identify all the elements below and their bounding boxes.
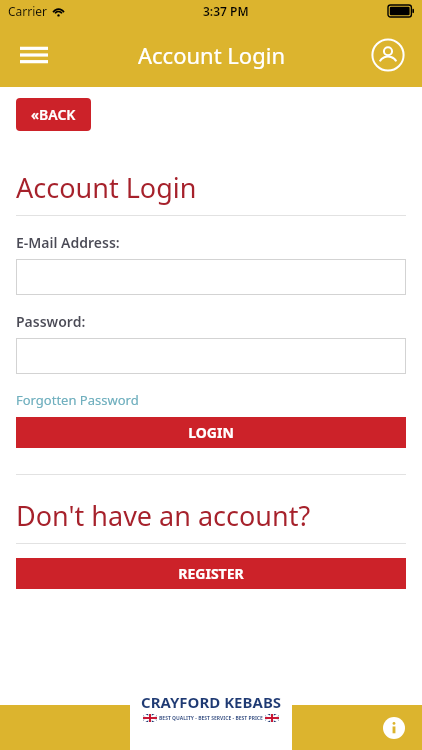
button[interactable]: Information <box>374 708 414 748</box>
button[interactable]: CRAYFORD KEBABS <box>130 675 292 750</box>
button[interactable]: Forgotten Password <box>16 391 139 409</box>
staticText: Account Login <box>138 40 285 70</box>
staticText: E-Mail Address: <box>16 233 120 252</box>
button[interactable]: Account <box>364 31 412 79</box>
button[interactable]: «BACK <box>16 98 91 131</box>
button[interactable] <box>16 259 406 295</box>
staticText: CRAYFORD KEBABS <box>141 692 282 712</box>
staticText: LOGIN <box>188 423 234 442</box>
staticText: «BACK <box>31 105 76 124</box>
staticText: BEST QUALITY - BEST SERVICE - BEST PRICE <box>159 715 263 722</box>
staticText: 3:37 PM <box>203 3 249 19</box>
staticText: Password: <box>16 312 86 331</box>
button[interactable] <box>16 338 406 374</box>
staticText: Don't have an account? <box>16 497 311 534</box>
staticText: REGISTER <box>178 564 244 583</box>
button[interactable]: LOGIN <box>16 417 406 448</box>
button[interactable]: Menu <box>10 31 58 79</box>
button[interactable]: REGISTER <box>16 558 406 589</box>
staticText: Account Login <box>16 169 197 206</box>
staticText: Carrier <box>8 3 48 19</box>
